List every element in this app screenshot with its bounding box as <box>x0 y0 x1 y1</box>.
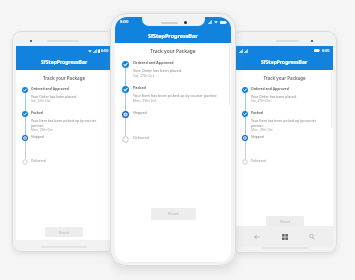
button[interactable]: Packed <box>121 86 227 111</box>
button[interactable]: Delivered <box>121 136 227 148</box>
staticText: Reset <box>280 219 291 224</box>
staticText: Shipped <box>31 134 44 139</box>
staticText: Your Item has been picked up by courier … <box>133 93 218 98</box>
staticText: Shipped <box>133 110 147 115</box>
staticText: 8:00 <box>120 19 129 25</box>
staticText: Mon, 29th Oct <box>31 128 53 132</box>
staticText: Your Item has been picked up by courier … <box>251 118 329 128</box>
staticText: Your Item has been picked up by courier … <box>31 118 108 128</box>
staticText: SfStepProgressBar <box>41 59 88 66</box>
staticText: Ordered and Approved <box>251 86 289 91</box>
button[interactable]: Search <box>305 230 319 244</box>
button[interactable]: Ordered and Approved <box>21 87 108 111</box>
staticText: Packed <box>133 85 146 90</box>
staticText: Reset <box>59 230 70 235</box>
button[interactable]: Home <box>278 230 292 244</box>
staticText: Packed <box>31 110 43 115</box>
staticText: SfStepProgressBar <box>148 32 198 39</box>
staticText: Mon, 29th Oct <box>133 98 157 103</box>
staticText: Reset <box>168 211 179 217</box>
staticText: Delivered <box>251 158 266 163</box>
staticText: Delivered <box>31 158 46 163</box>
staticText: Track your Package <box>236 75 333 81</box>
button[interactable]: Delivered <box>241 159 329 170</box>
staticText: Sat, 27th Oct <box>31 99 51 103</box>
staticText: Packed <box>251 110 263 115</box>
staticText: Track your Package <box>16 75 112 81</box>
staticText: Your Order has been placed. <box>133 68 183 73</box>
staticText: Your Order has been placed. <box>251 94 297 99</box>
button[interactable]: Ordered and Approved <box>121 61 227 86</box>
button[interactable]: Delivered <box>21 159 108 170</box>
staticText: Delivered <box>133 135 150 140</box>
staticText: Ordered and Approved <box>31 86 69 91</box>
staticText: Ordered and Approved <box>133 60 174 65</box>
button[interactable]: Reset <box>45 227 83 237</box>
staticText: Track your Package <box>115 48 231 55</box>
staticText: 8:00 <box>322 48 330 53</box>
button[interactable]: Reset <box>266 216 304 226</box>
button[interactable]: Shipped <box>241 135 329 159</box>
button[interactable]: Shipped <box>121 111 227 136</box>
staticText: Sat, 27th Oct <box>133 73 155 78</box>
staticText: Shipped <box>251 134 264 139</box>
button[interactable]: Back <box>250 230 264 244</box>
button[interactable]: Reset <box>151 208 196 220</box>
button[interactable]: Ordered and Approved <box>241 87 329 111</box>
button[interactable]: Packed <box>21 111 108 135</box>
staticText: SfStepProgressBar <box>261 59 308 66</box>
staticText: 8:00 <box>101 48 109 53</box>
staticText: Your Order has been placed. <box>31 94 77 99</box>
staticText: Mon, 29th Oct <box>251 128 273 132</box>
button[interactable]: Packed <box>241 111 329 135</box>
staticText: Sat, 27th Oct <box>251 99 271 103</box>
button[interactable]: Shipped <box>21 135 108 159</box>
